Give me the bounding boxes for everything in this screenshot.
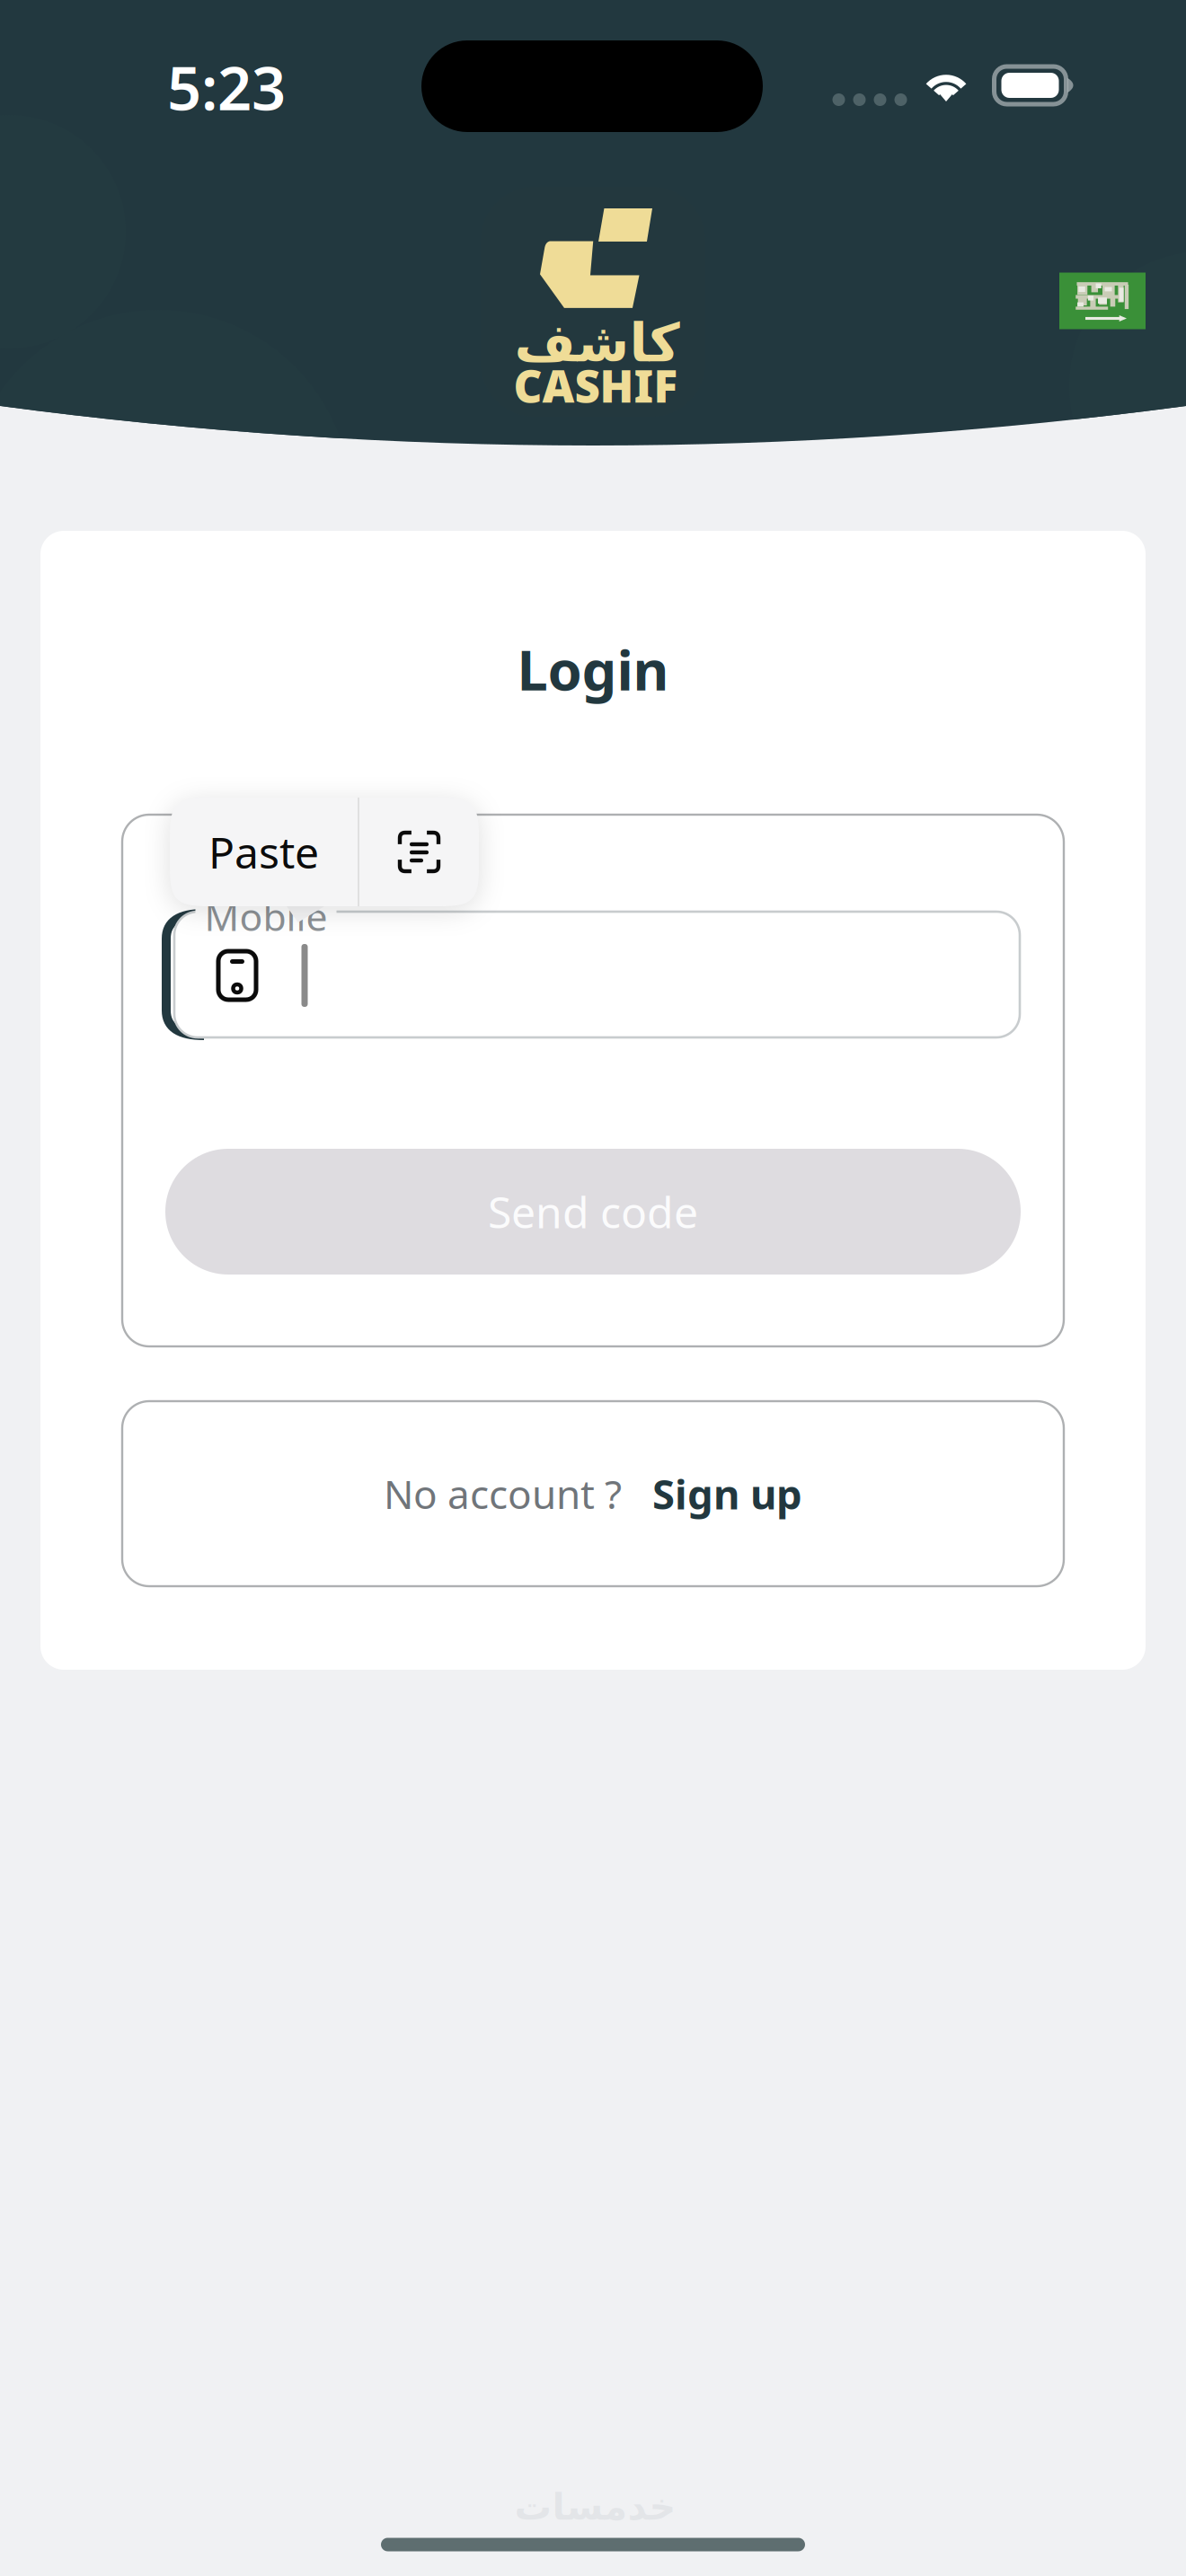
button[interactable]: Scan text (359, 798, 479, 906)
button[interactable]: Change language (1059, 273, 1146, 329)
staticText: Paste (208, 823, 319, 880)
staticText: كاشف (514, 313, 679, 373)
staticText: Send code (488, 1183, 698, 1240)
staticText: Mobile (204, 891, 327, 942)
staticText: Sign up (652, 1467, 802, 1521)
staticText: Login (517, 633, 669, 706)
staticText: 5:23 (167, 47, 286, 127)
button[interactable]: Paste (170, 798, 358, 906)
button[interactable]: Mobile number (165, 898, 1046, 1060)
staticText: No account ? (384, 1467, 622, 1520)
staticText: CASHIF (513, 356, 678, 415)
button[interactable]: No account ? (122, 1401, 1064, 1586)
staticText: خدمسات (514, 2486, 676, 2528)
button[interactable]: Send code (165, 1149, 1021, 1275)
